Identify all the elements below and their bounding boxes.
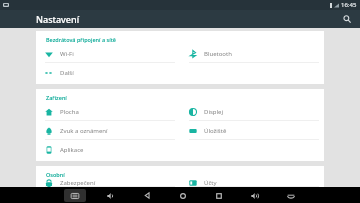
staticText: Zvuk a oznámení	[60, 127, 108, 135]
button[interactable]: Back	[136, 189, 158, 202]
button[interactable]: Recent apps	[208, 189, 230, 202]
staticText: Účty	[204, 179, 217, 187]
staticText: Osobní	[46, 171, 65, 178]
staticText: Úložiště	[204, 127, 227, 135]
button[interactable]: Plocha	[36, 102, 180, 121]
button[interactable]: Účty	[180, 179, 324, 187]
staticText: Nastavení	[36, 13, 80, 25]
staticText: Zabezpečení	[60, 179, 96, 187]
staticText: Zařízení	[46, 94, 67, 101]
staticText: Aplikace	[60, 146, 84, 154]
button[interactable]: Displej	[180, 102, 324, 121]
button[interactable]: Zvuk a oznámení	[36, 121, 180, 140]
button[interactable]: Keyboard	[64, 189, 86, 202]
staticText: Bezdrátová připojení a sítě	[46, 36, 116, 43]
staticText: Wi-Fi	[60, 50, 74, 58]
staticText: Další	[60, 69, 74, 77]
staticText: Plocha	[60, 108, 79, 116]
button[interactable]: Aplikace	[36, 140, 180, 159]
button[interactable]: Bluetooth	[180, 44, 324, 63]
button[interactable]: Home	[172, 189, 194, 202]
staticText: 16:45	[341, 1, 357, 9]
button[interactable]: Volume down	[100, 189, 122, 202]
button[interactable]: Úložiště	[180, 121, 324, 140]
button[interactable]: Shortcuts	[280, 189, 302, 202]
button[interactable]: Volume up	[244, 189, 266, 202]
staticText: Bluetooth	[204, 50, 232, 58]
staticText: Displej	[204, 108, 223, 116]
button[interactable]: Další	[36, 63, 180, 82]
button[interactable]: Search	[339, 11, 355, 27]
button[interactable]: Zabezpečení	[36, 179, 180, 187]
button[interactable]: Wi-Fi	[36, 44, 180, 63]
